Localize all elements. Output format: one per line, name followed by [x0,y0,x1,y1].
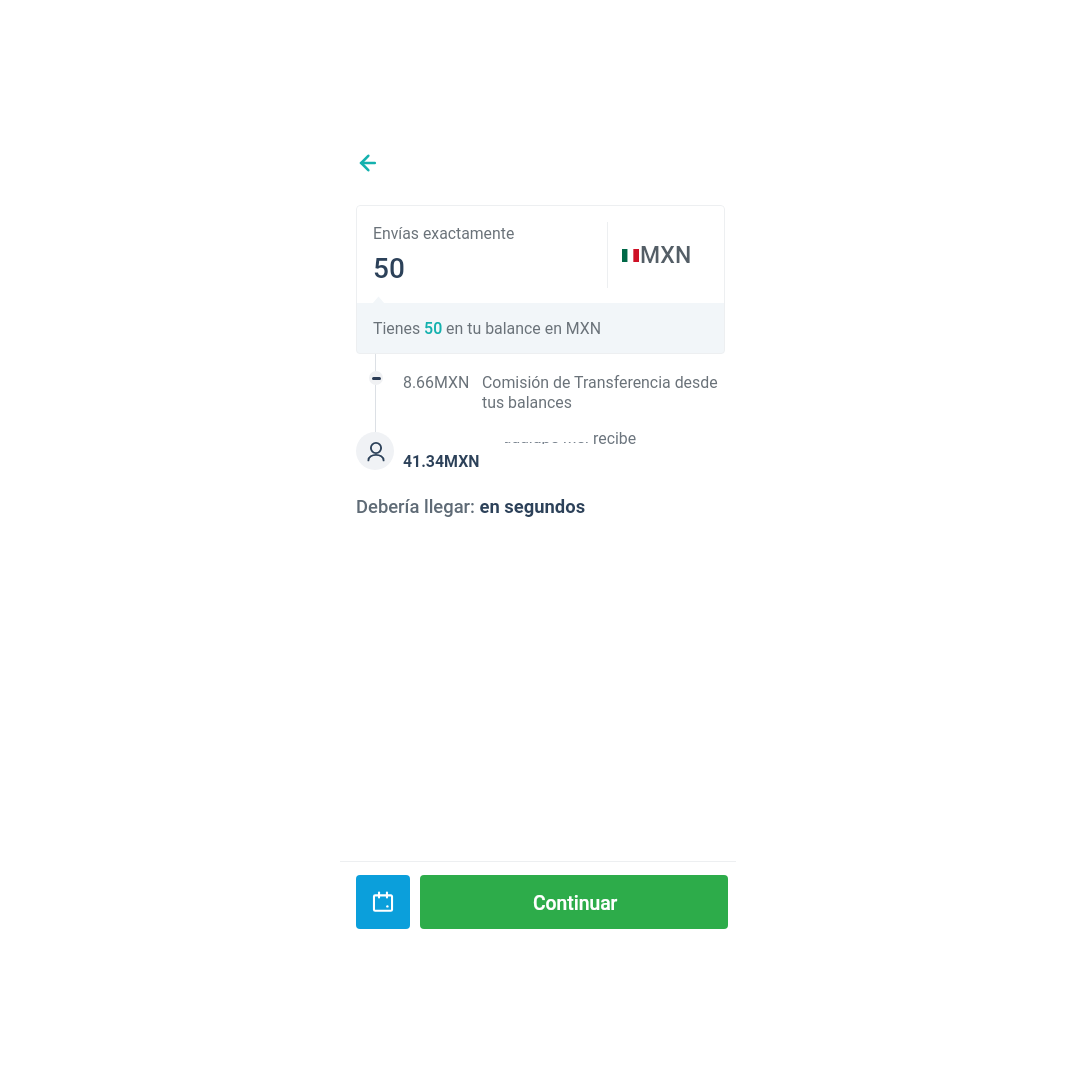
staticText: 50 [373,252,405,285]
staticText: 8.66MXN [403,373,470,392]
button[interactable]: MXN [608,206,725,303]
button[interactable]: Tienes 50 en tu balance en MXN [356,303,725,354]
staticText: recibe [593,429,637,448]
button[interactable]: Schedule transfer [356,875,410,929]
staticText: Envías exactamente [373,224,515,243]
staticText: Continuar [533,892,618,915]
staticText: Tienes 50 en tu balance en MXN [373,319,602,338]
button[interactable]: Envías exactamente [356,206,607,303]
staticText: MXN [640,242,692,269]
staticText: Debería llegar: en segundos [356,496,586,518]
staticText: Comisión de Transferencia desde tus bala… [482,373,719,412]
button[interactable]: Continuar [420,875,728,929]
button[interactable]: Back [351,146,385,180]
staticText: 41.34MXN [403,452,480,471]
staticText: Guadalupe Mendoza [505,442,591,444]
